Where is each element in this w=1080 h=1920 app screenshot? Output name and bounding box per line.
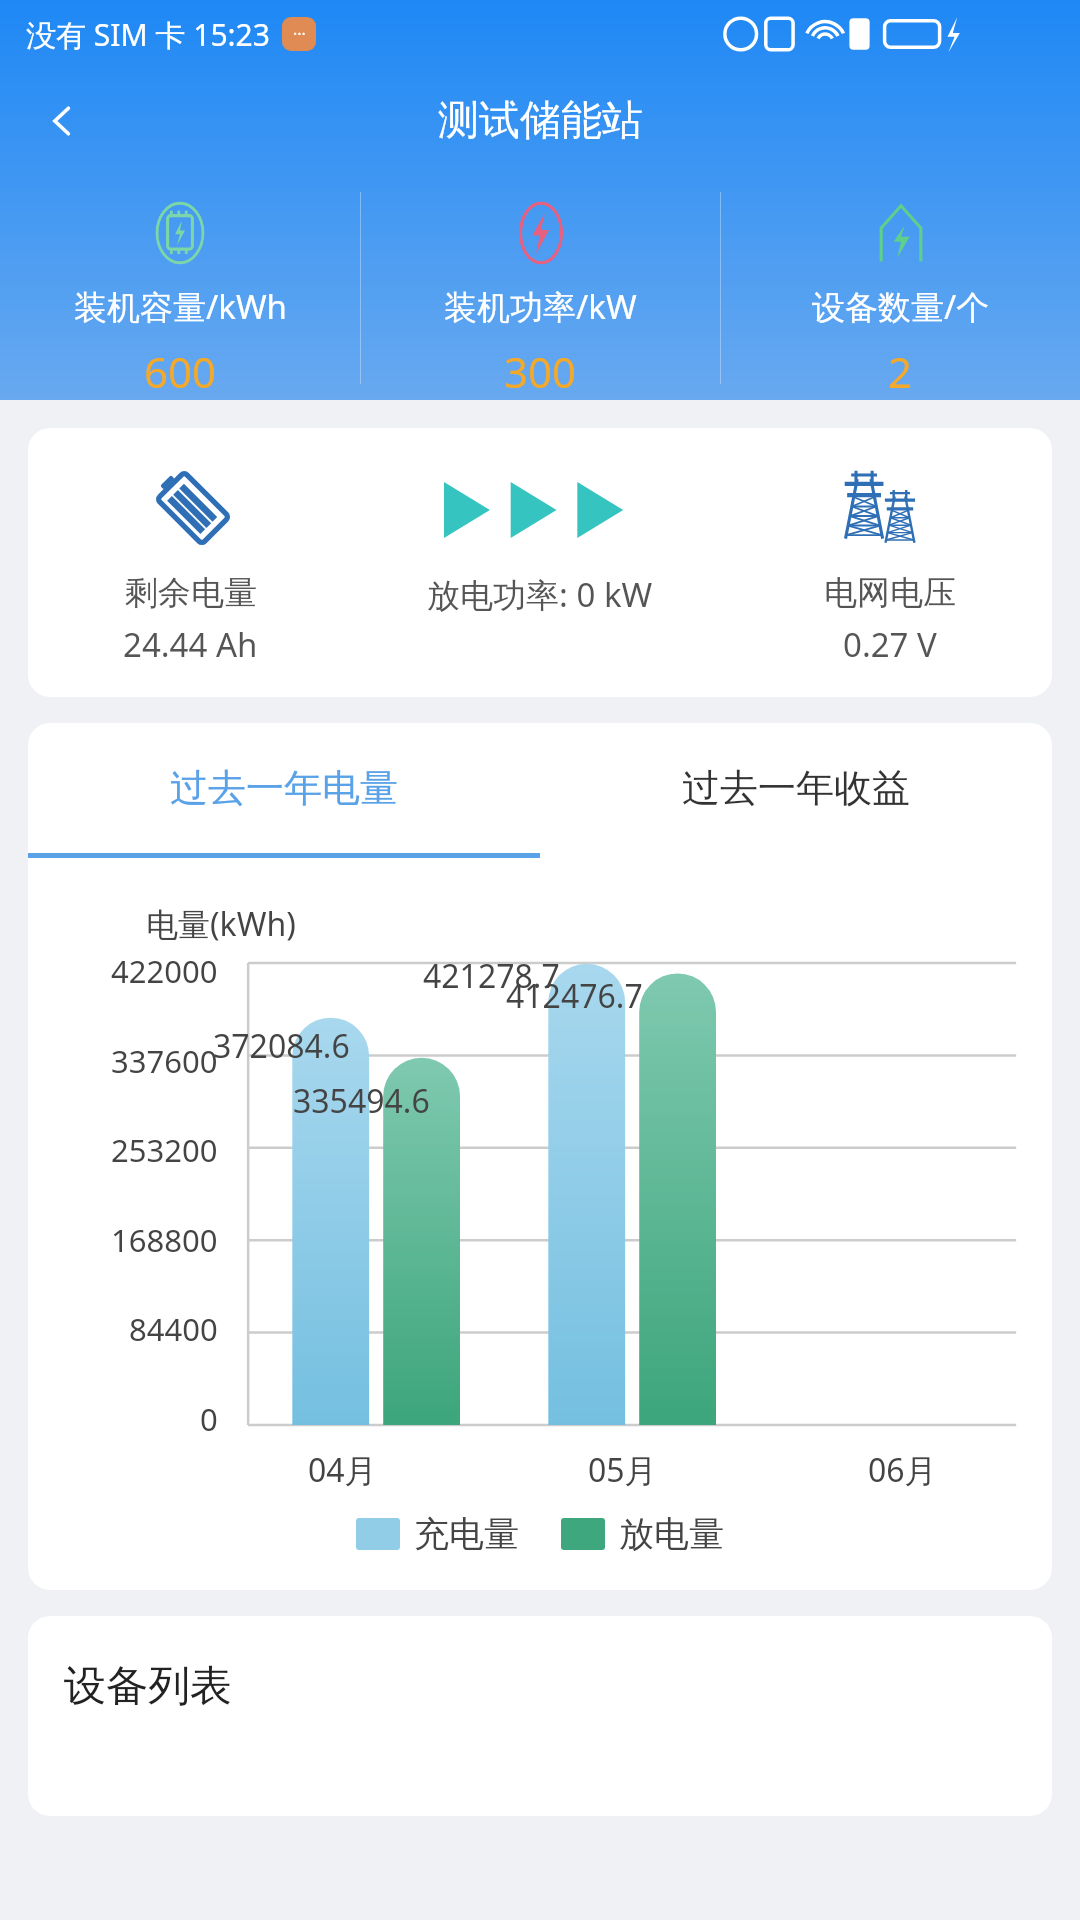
- staticText: 06月: [868, 1448, 937, 1492]
- staticText: 没有 SIM 卡 15:23: [26, 14, 270, 55]
- staticText: 0.27 V: [843, 622, 937, 667]
- staticText: 253200: [111, 1129, 218, 1171]
- staticText: 放电功率: 0 kW: [427, 572, 653, 617]
- staticText: 05月: [588, 1448, 657, 1492]
- staticText: 电量(kWh): [146, 902, 296, 946]
- button[interactable]: 过去一年收益: [540, 723, 1052, 853]
- staticText: ···: [293, 23, 306, 45]
- staticText: 04月: [308, 1448, 377, 1492]
- staticText: 372084.6: [213, 1024, 350, 1068]
- staticText: 84400: [129, 1308, 218, 1350]
- staticText: 放电量: [619, 1512, 724, 1556]
- button[interactable]: Back: [26, 85, 98, 157]
- staticText: 设备列表: [64, 1660, 232, 1713]
- button[interactable]: 剩余电量: [28, 428, 1052, 697]
- staticText: 300: [504, 343, 577, 400]
- staticText: 设备数量/个: [812, 284, 990, 329]
- staticText: 电网电压: [824, 572, 956, 614]
- staticText: 168800: [111, 1219, 218, 1261]
- staticText: 测试储能站: [438, 95, 643, 147]
- staticText: 过去一年电量: [170, 764, 398, 812]
- staticText: 0: [200, 1398, 218, 1440]
- button[interactable]: 装机功率/kW: [361, 180, 720, 400]
- staticText: 装机功率/kW: [444, 284, 637, 329]
- staticText: 600: [144, 343, 217, 400]
- staticText: 421278.7: [423, 954, 560, 998]
- button[interactable]: 设备数量/个: [721, 180, 1080, 400]
- staticText: 装机容量/kWh: [74, 284, 287, 329]
- button[interactable]: 设备列表: [28, 1616, 1052, 1816]
- staticText: 422000: [111, 950, 218, 992]
- staticText: 335494.6: [293, 1079, 430, 1123]
- staticText: 充电量: [414, 1512, 519, 1556]
- staticText: 24.44 Ah: [123, 622, 258, 667]
- button[interactable]: 装机容量/kWh: [0, 180, 360, 400]
- button[interactable]: 过去一年电量: [28, 723, 540, 853]
- staticText: 剩余电量: [125, 572, 257, 614]
- staticText: 过去一年收益: [682, 764, 910, 812]
- staticText: 2: [888, 343, 913, 400]
- staticText: 337600: [111, 1040, 218, 1082]
- staticText: 412476.7: [506, 974, 643, 1018]
